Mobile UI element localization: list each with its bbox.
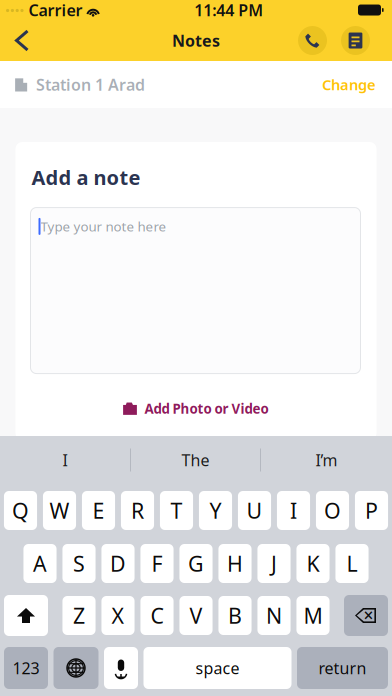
button[interactable]: M bbox=[296, 596, 330, 635]
staticText: W bbox=[49, 496, 69, 525]
staticText: return bbox=[318, 657, 366, 679]
staticText: E bbox=[92, 496, 104, 525]
button[interactable]: Change bbox=[322, 75, 376, 94]
button[interactable]: I bbox=[277, 491, 310, 530]
button[interactable]: T bbox=[160, 491, 193, 530]
staticText: N bbox=[266, 601, 282, 630]
staticText: × bbox=[363, 603, 373, 626]
button[interactable]: P bbox=[355, 491, 388, 530]
staticText: Y bbox=[209, 496, 221, 525]
staticText: U bbox=[246, 496, 262, 525]
button[interactable]: Next keyboard bbox=[53, 647, 98, 689]
staticText: O bbox=[324, 496, 341, 525]
button[interactable]: Delete bbox=[344, 595, 388, 636]
staticText: F bbox=[151, 549, 162, 578]
staticText: space bbox=[195, 657, 239, 679]
button[interactable]: Z bbox=[62, 596, 96, 635]
staticText: I bbox=[62, 449, 67, 471]
staticText: Type your note here bbox=[40, 218, 166, 235]
button[interactable]: space bbox=[143, 647, 291, 689]
staticText: C bbox=[150, 601, 163, 630]
button[interactable]: C bbox=[140, 596, 174, 635]
button[interactable]: Back bbox=[4, 22, 40, 58]
button[interactable]: O bbox=[316, 491, 349, 530]
staticText: A bbox=[33, 549, 47, 578]
button[interactable]: H bbox=[218, 544, 251, 583]
button[interactable]: U bbox=[238, 491, 271, 530]
staticText: Add Photo or Video bbox=[144, 400, 268, 417]
button[interactable]: 123 bbox=[4, 647, 48, 689]
staticText: M bbox=[303, 601, 322, 630]
staticText: B bbox=[228, 601, 242, 630]
staticText: The bbox=[181, 449, 209, 471]
button[interactable]: return bbox=[297, 647, 388, 689]
staticText: P bbox=[365, 496, 378, 525]
button[interactable]: J bbox=[257, 544, 290, 583]
button[interactable]: V bbox=[179, 596, 213, 635]
staticText: K bbox=[306, 549, 319, 578]
staticText: 11:44 PM bbox=[194, 0, 263, 21]
staticText: Station 1 Arad bbox=[36, 74, 145, 95]
button[interactable]: N bbox=[257, 596, 291, 635]
staticText: 123 bbox=[12, 657, 39, 679]
staticText: L bbox=[346, 549, 357, 578]
button[interactable]: I bbox=[0, 436, 130, 484]
staticText: D bbox=[110, 549, 126, 578]
button[interactable]: W bbox=[43, 491, 76, 530]
button[interactable]: K bbox=[296, 544, 329, 583]
staticText: Z bbox=[73, 601, 85, 630]
staticText: S bbox=[73, 549, 85, 578]
button[interactable]: I’m bbox=[261, 436, 392, 484]
button[interactable]: Call bbox=[298, 26, 327, 55]
button[interactable]: Documents bbox=[341, 26, 370, 55]
staticText: I bbox=[290, 496, 297, 525]
staticText: I’m bbox=[315, 449, 337, 471]
button[interactable]: Dictate bbox=[104, 647, 138, 689]
staticText: Add a note bbox=[31, 164, 140, 191]
button[interactable]: F bbox=[140, 544, 173, 583]
staticText: J bbox=[271, 549, 277, 578]
button[interactable]: Q bbox=[4, 491, 37, 530]
staticText: Change bbox=[322, 75, 376, 94]
staticText: Q bbox=[12, 496, 29, 525]
button[interactable]: G bbox=[179, 544, 212, 583]
staticText: T bbox=[170, 496, 182, 525]
staticText: H bbox=[227, 549, 243, 578]
button[interactable]: A bbox=[23, 544, 56, 583]
staticText: X bbox=[111, 601, 124, 630]
button[interactable]: D bbox=[101, 544, 134, 583]
button[interactable]: L bbox=[335, 544, 368, 583]
staticText: R bbox=[131, 496, 144, 525]
staticText: Notes bbox=[172, 30, 220, 51]
staticText: Carrier bbox=[29, 0, 83, 21]
button[interactable]: Add Photo or Video bbox=[30, 392, 360, 426]
button[interactable]: R bbox=[121, 491, 154, 530]
button[interactable]: B bbox=[218, 596, 252, 635]
button[interactable]: X bbox=[101, 596, 135, 635]
staticText: V bbox=[189, 601, 202, 630]
button[interactable]: Shift bbox=[4, 595, 48, 636]
button[interactable]: S bbox=[62, 544, 95, 583]
staticText: G bbox=[188, 549, 204, 578]
button[interactable]: The bbox=[131, 436, 260, 484]
button[interactable]: E bbox=[82, 491, 115, 530]
button[interactable]: Y bbox=[199, 491, 232, 530]
